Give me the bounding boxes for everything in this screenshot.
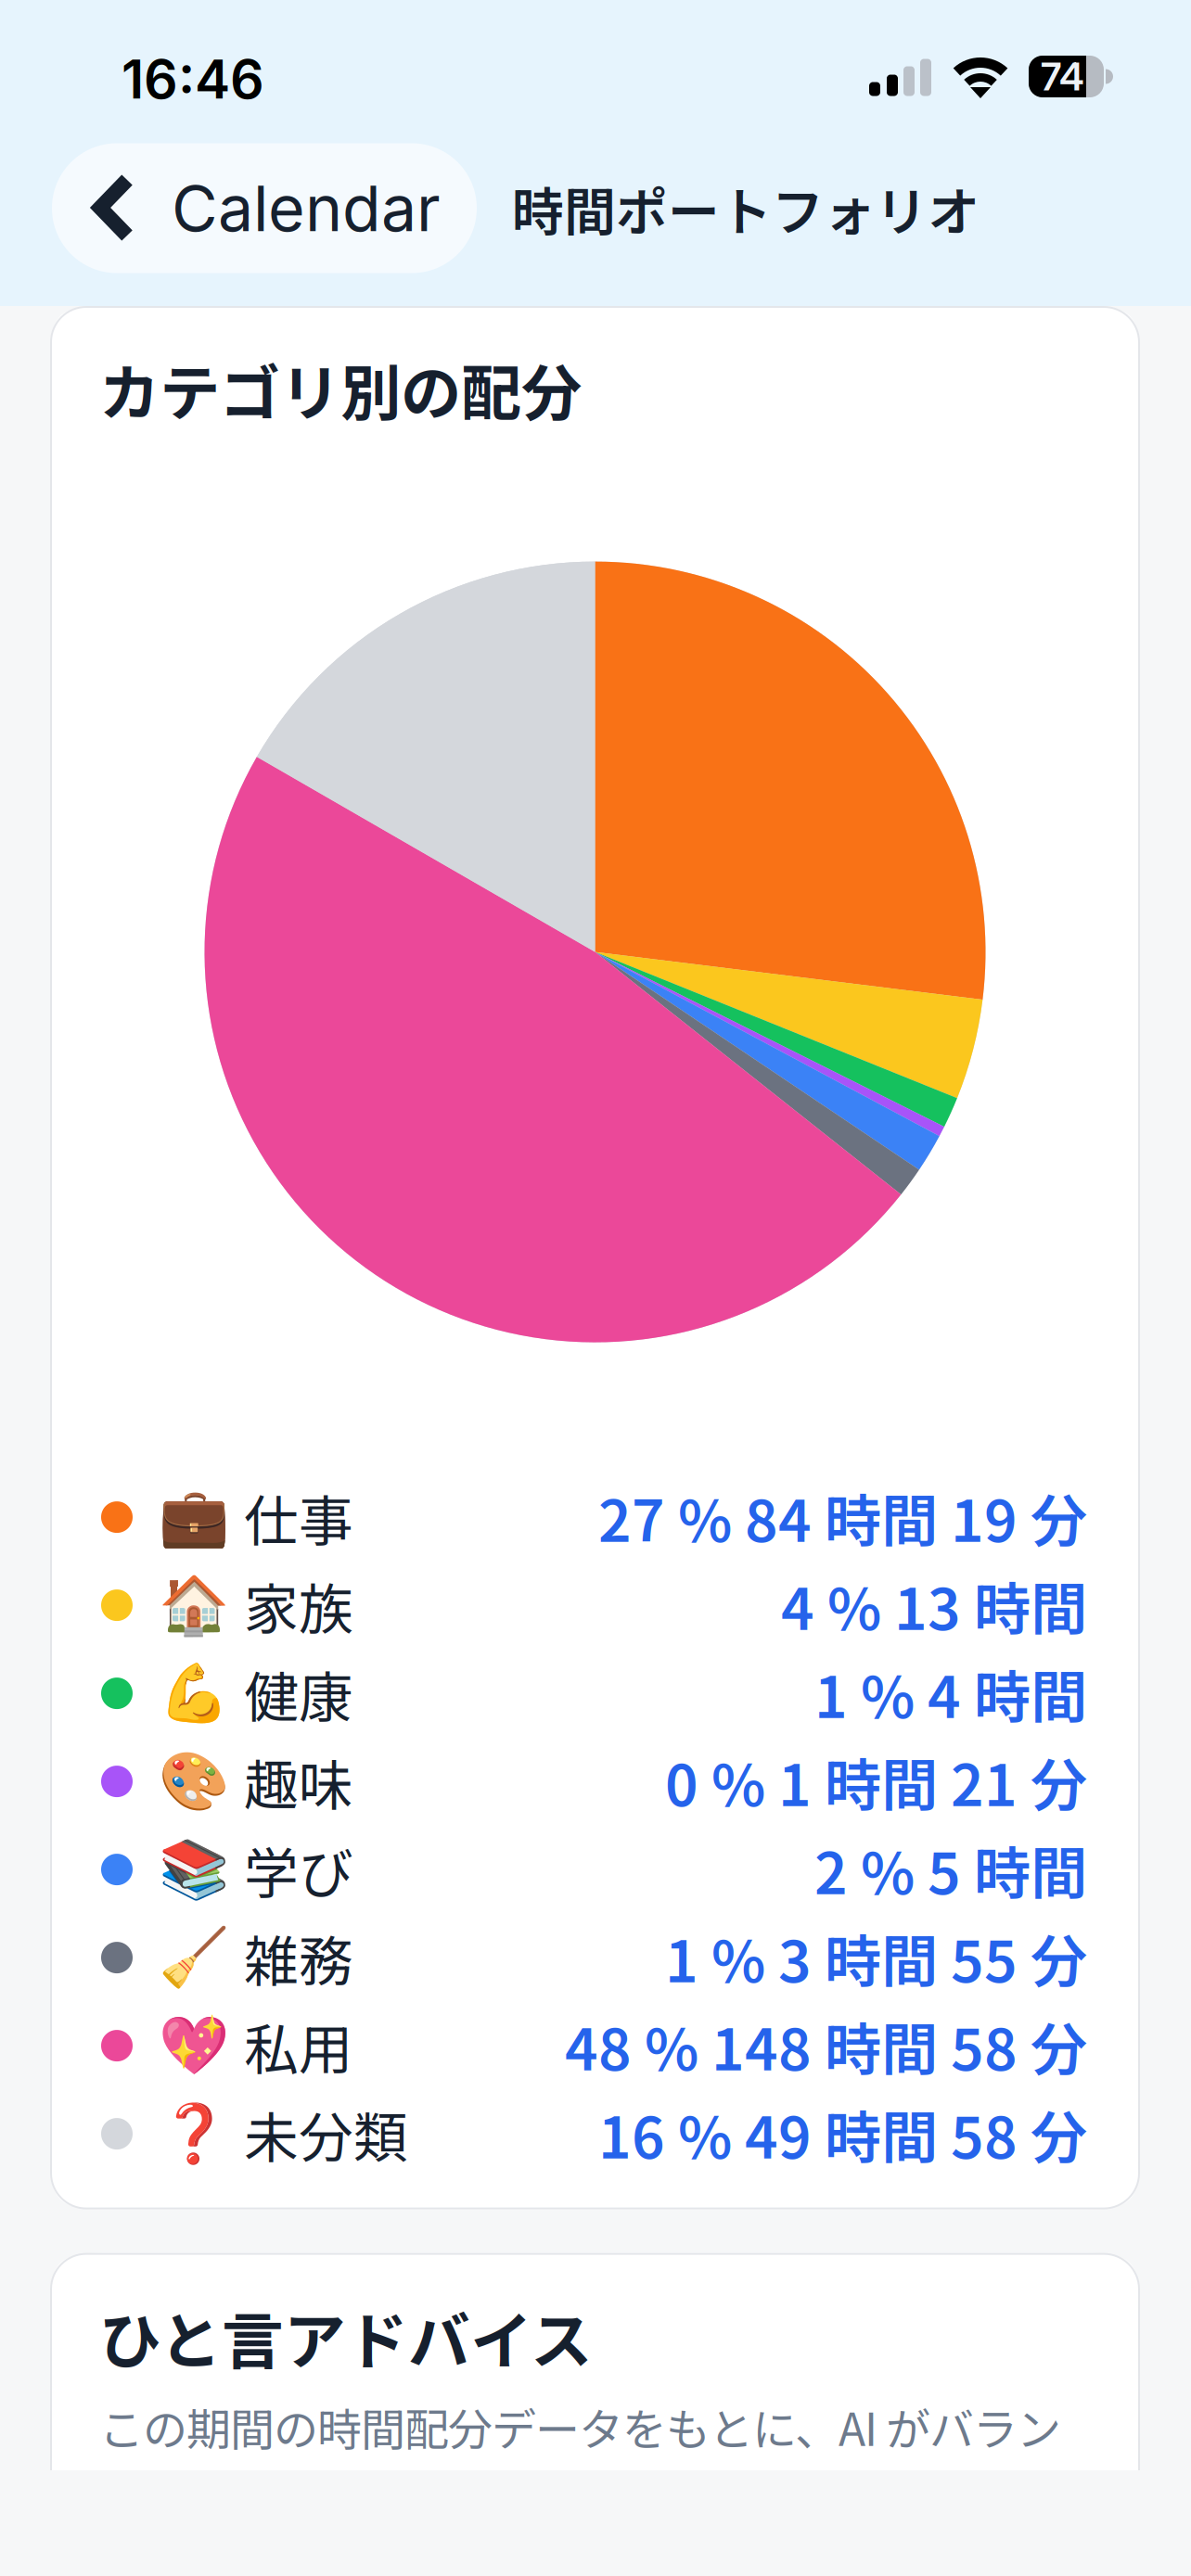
button[interactable]: Calendar	[52, 143, 477, 273]
staticText: 私用	[244, 2006, 353, 2085]
staticText: 💪	[159, 1661, 229, 1726]
staticText: 仕事	[244, 1478, 353, 1557]
staticText: 📚	[159, 1837, 229, 1902]
staticText: 0 % 1 時間 21 分	[665, 1740, 1087, 1823]
staticText: 学び	[244, 1830, 353, 1909]
staticText: 家族	[244, 1566, 353, 1645]
staticText: 時間ポートフォリオ	[512, 171, 980, 246]
staticText: 2 % 5 時間	[814, 1828, 1087, 1911]
staticText: 🧹	[159, 1925, 229, 1990]
staticText: 48 % 148 時間 58 分	[565, 2005, 1087, 2087]
staticText: 健康	[244, 1654, 353, 1733]
staticText: 雑務	[244, 1918, 353, 1997]
staticText: 1 % 4 時間	[814, 1652, 1087, 1734]
staticText: Calendar	[172, 170, 441, 246]
staticText: 趣味	[244, 1742, 353, 1821]
staticText: 💼	[159, 1485, 229, 1550]
staticText: 1 % 3 時間 55 分	[665, 1916, 1087, 1999]
staticText: 74	[1041, 53, 1084, 100]
staticText: 🏠	[159, 1573, 229, 1638]
staticText: 未分類	[244, 2094, 408, 2173]
staticText: 27 % 84 時間 19 分	[598, 1476, 1087, 1558]
staticText: この期間の時間配分データをもとに、AI がバラン	[99, 2394, 1061, 2459]
staticText: 🎨	[159, 1749, 229, 1814]
staticText: 16:46	[122, 47, 264, 111]
staticText: ひと言アドバイス	[99, 2292, 593, 2381]
staticText: 16 % 49 時間 58 分	[598, 2093, 1087, 2175]
staticText: 💖	[159, 2013, 229, 2078]
staticText: 4 % 13 時間	[781, 1564, 1087, 1646]
staticText: ❓	[159, 2101, 229, 2166]
staticText: カテゴリ別の配分	[99, 345, 582, 433]
